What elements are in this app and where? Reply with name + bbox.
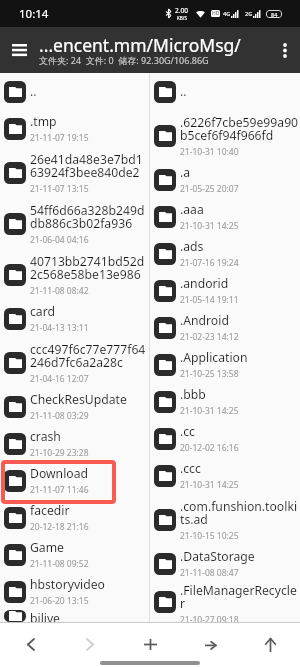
staticText: 40713bb2741bd52d2c568e58be13e986 [30,253,149,283]
staticText: bilive [30,610,60,622]
staticText: .. [180,83,187,100]
staticText: 21-11-08 03:29 [30,410,89,422]
staticText: 4G [223,10,231,17]
staticText: 21-11-07 19:15 [30,132,89,144]
button[interactable]: .DataStorage [150,545,300,582]
button[interactable]: Up [240,622,300,667]
staticText: 20-12-18 21:16 [30,521,89,533]
button[interactable]: facedir [0,499,149,536]
button[interactable]: .Application [150,346,300,383]
staticText: 21-10-27 09:18 [180,614,239,622]
button[interactable]: New folder [120,622,180,667]
button[interactable]: .cc [150,420,300,457]
staticText: 21-06-20 13:15 [30,595,89,607]
staticText: 21-11-08 08:42 [30,285,89,297]
staticText: 21-10-15 10:25 [180,530,239,542]
staticText: 26e41da48e3e7bd163924f3bee840de2 [30,151,149,181]
staticText: 21-10-25 13:58 [180,368,239,380]
staticText: 21-11-07 11:46 [30,484,89,496]
button[interactable]: Download [0,462,149,499]
staticText: .tmp [30,113,57,130]
button[interactable]: .andorid [150,272,300,309]
staticText: 20-12-02 16:16 [180,442,239,454]
button[interactable]: 40713bb2741bd52d2c568e58be13e986 [0,249,149,300]
button[interactable]: .tmp [0,110,149,147]
staticText: .ads [180,238,204,255]
button[interactable]: .ads [150,235,300,272]
staticText: 21-05-25 20:07 [180,183,239,195]
button[interactable]: Back [0,622,60,667]
button[interactable]: .Android [150,309,300,346]
button[interactable]: .6226f7cbe59e99a90b5cef6f94f966fd [150,110,300,161]
staticText: 54ff6d66a328b249ddb886c3b02fa936 [30,202,149,232]
staticText: 21-07-16 19:24 [180,257,239,269]
staticText: 21-10-29 23:28 [30,447,89,459]
button[interactable]: crash [0,425,149,462]
staticText: 10:14 [19,6,49,22]
staticText: ccc497f6c77e777f64246d7fc6a2a28c [30,341,149,371]
staticText: .Android [180,312,229,329]
staticText: HD [212,10,220,17]
staticText: 21-05-14 19:11 [180,294,239,306]
staticText: hbstoryvideo [30,576,105,593]
staticText: .cc [180,423,195,440]
staticText: Download [30,465,88,482]
button[interactable]: 54ff6d66a328b249ddb886c3b02fa936 [0,198,149,249]
staticText: card [30,303,55,320]
staticText: .bbb [180,386,206,403]
button[interactable]: Menu [0,27,39,73]
staticText: 21-11-08 08:47 [180,567,239,579]
staticText: 2G [245,10,253,17]
staticText: .DataStorage [180,548,255,565]
staticText: ...encent.mm/MicroMsg/ [39,33,241,57]
button[interactable]: CheckResUpdate [0,388,149,425]
staticText: .com.funshion.toolkits.ad [180,498,300,528]
button[interactable]: Move [180,622,240,667]
staticText: crash [30,428,61,445]
staticText: 21-10-31 14:25 [180,405,239,417]
button[interactable]: .aaa [150,198,300,235]
staticText: 21-02-23 14:12 [180,331,239,343]
staticText: Game [30,539,64,556]
staticText: .ccc [180,460,201,477]
staticText: 21-11-08 09:52 [30,558,89,570]
button[interactable]: card [0,300,149,337]
staticText: .a [180,164,191,181]
button[interactable]: hbstoryvideo [0,573,149,610]
staticText: 文件夹: 24 文件: 0 储存: 92.30G/106.86G [39,54,209,66]
staticText: .Application [180,349,248,366]
staticText: 21-06-04 04:16 [30,234,89,246]
button[interactable]: More options [270,27,300,73]
staticText: .6226f7cbe59e99a90b5cef6f94f966fd [180,114,300,144]
staticText: KB/S [177,15,187,21]
button[interactable]: .FileManagerRecycler [150,582,300,622]
staticText: .aaa [180,201,204,218]
button[interactable]: bilive [0,610,149,622]
button[interactable]: .com.funshion.toolkits.ad [150,494,300,545]
button[interactable]: ccc497f6c77e777f64246d7fc6a2a28c [0,337,149,388]
button[interactable]: 26e41da48e3e7bd163924f3bee840de2 [0,147,149,198]
staticText: .FileManagerRecycler [180,582,300,612]
button[interactable]: .. [150,73,300,110]
button[interactable]: .bbb [150,383,300,420]
button[interactable]: Forward [60,622,120,667]
button[interactable]: Game [0,536,149,573]
staticText: 84 [271,11,278,18]
button[interactable]: .. [0,73,149,110]
staticText: 21-10-31 10:40 [180,146,239,158]
staticText: .andorid [180,275,229,292]
button[interactable]: .a [150,161,300,198]
staticText: 21-10-31 14:25 [180,479,239,491]
staticText: 21-11-07 13:15 [30,183,89,195]
staticText: .. [30,83,37,100]
staticText: 2.00 [175,6,188,15]
staticText: 21-04-16 12:07 [30,373,89,385]
staticText: 21-10-31 14:25 [180,220,239,232]
staticText: 21-04-13 13:11 [30,322,89,334]
button[interactable]: .ccc [150,457,300,494]
staticText: CheckResUpdate [30,391,127,408]
staticText: facedir [30,502,70,519]
